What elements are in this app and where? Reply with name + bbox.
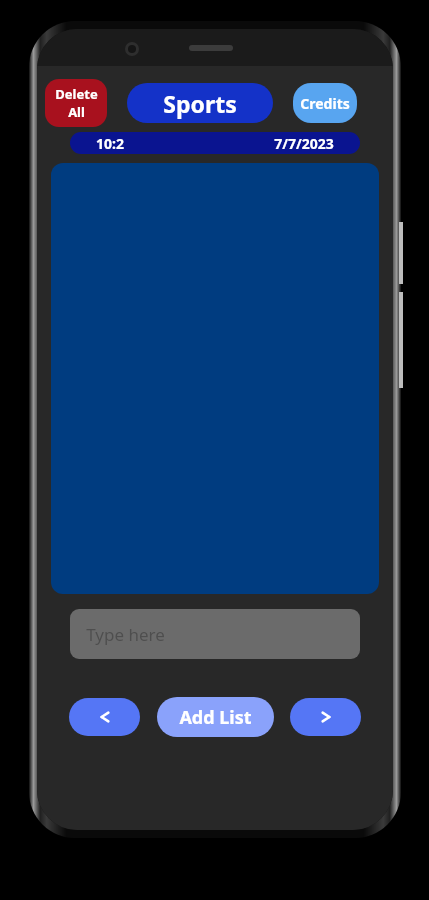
staticText: Sports <box>163 88 237 119</box>
staticText: Credits <box>300 94 350 113</box>
button[interactable]: Previous list <box>69 698 140 736</box>
button[interactable]: Next list <box>290 698 361 736</box>
staticText: Add List <box>179 705 252 730</box>
staticText: Type here <box>86 623 165 646</box>
button[interactable]: Add List <box>157 697 274 737</box>
staticText: Delete <box>55 85 98 103</box>
button[interactable]: Sports <box>127 83 273 123</box>
button[interactable]: Credits <box>293 83 357 123</box>
staticText: 10:2 <box>96 134 124 153</box>
staticText: 7/7/2023 <box>274 134 334 153</box>
button[interactable]: Type here <box>70 609 360 659</box>
staticText: All <box>68 103 85 121</box>
button[interactable]: Delete <box>45 79 107 127</box>
